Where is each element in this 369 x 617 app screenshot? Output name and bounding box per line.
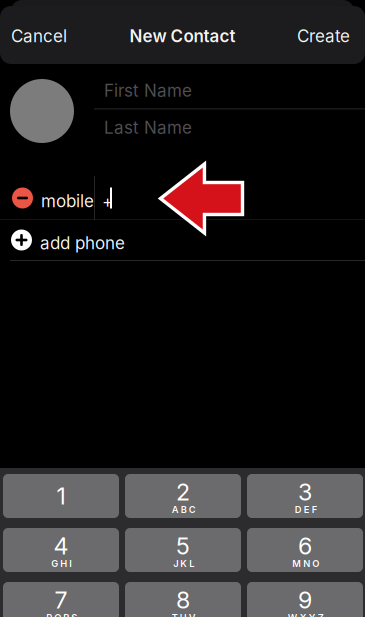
- button[interactable]: Last Name: [104, 110, 369, 145]
- staticText: 8: [176, 586, 190, 614]
- button[interactable]: 3: [247, 474, 363, 518]
- button[interactable]: 8: [125, 582, 241, 617]
- button[interactable]: 6: [247, 528, 363, 572]
- staticText: Create: [297, 26, 350, 46]
- staticText: +: [102, 191, 113, 211]
- staticText: First Name: [104, 80, 192, 101]
- button[interactable]: 5: [125, 528, 241, 572]
- button[interactable]: 9: [247, 582, 363, 617]
- staticText: D E F: [295, 504, 317, 515]
- staticText: New Contact: [129, 26, 235, 46]
- staticText: 3: [298, 478, 312, 506]
- button[interactable]: Cancel: [11, 14, 91, 58]
- staticText: W X Y Z: [288, 612, 324, 617]
- staticText: 2: [176, 478, 190, 506]
- staticText: M N O: [292, 558, 319, 569]
- button[interactable]: 4: [3, 528, 119, 572]
- staticText: G H I: [51, 558, 72, 569]
- button[interactable]: 2: [125, 474, 241, 518]
- button[interactable]: First Name: [104, 73, 369, 108]
- staticText: mobile: [41, 191, 94, 211]
- button[interactable]: mobile: [0, 176, 365, 220]
- staticText: J K L: [173, 558, 194, 569]
- staticText: 6: [298, 532, 312, 560]
- staticText: P Q R S: [46, 612, 77, 617]
- button[interactable]: add phone: [0, 220, 365, 260]
- staticText: 1: [56, 482, 65, 510]
- staticText: 4: [53, 532, 68, 560]
- staticText: add phone: [40, 233, 125, 253]
- staticText: 9: [298, 586, 312, 614]
- staticText: Cancel: [11, 26, 67, 46]
- button[interactable]: 1: [3, 474, 119, 518]
- button[interactable]: 7: [3, 582, 119, 617]
- staticText: 7: [54, 586, 67, 614]
- staticText: T U V: [172, 612, 196, 617]
- staticText: A B C: [172, 504, 196, 515]
- staticText: Last Name: [104, 117, 192, 138]
- button[interactable]: Create: [270, 14, 350, 58]
- staticText: 5: [176, 532, 190, 560]
